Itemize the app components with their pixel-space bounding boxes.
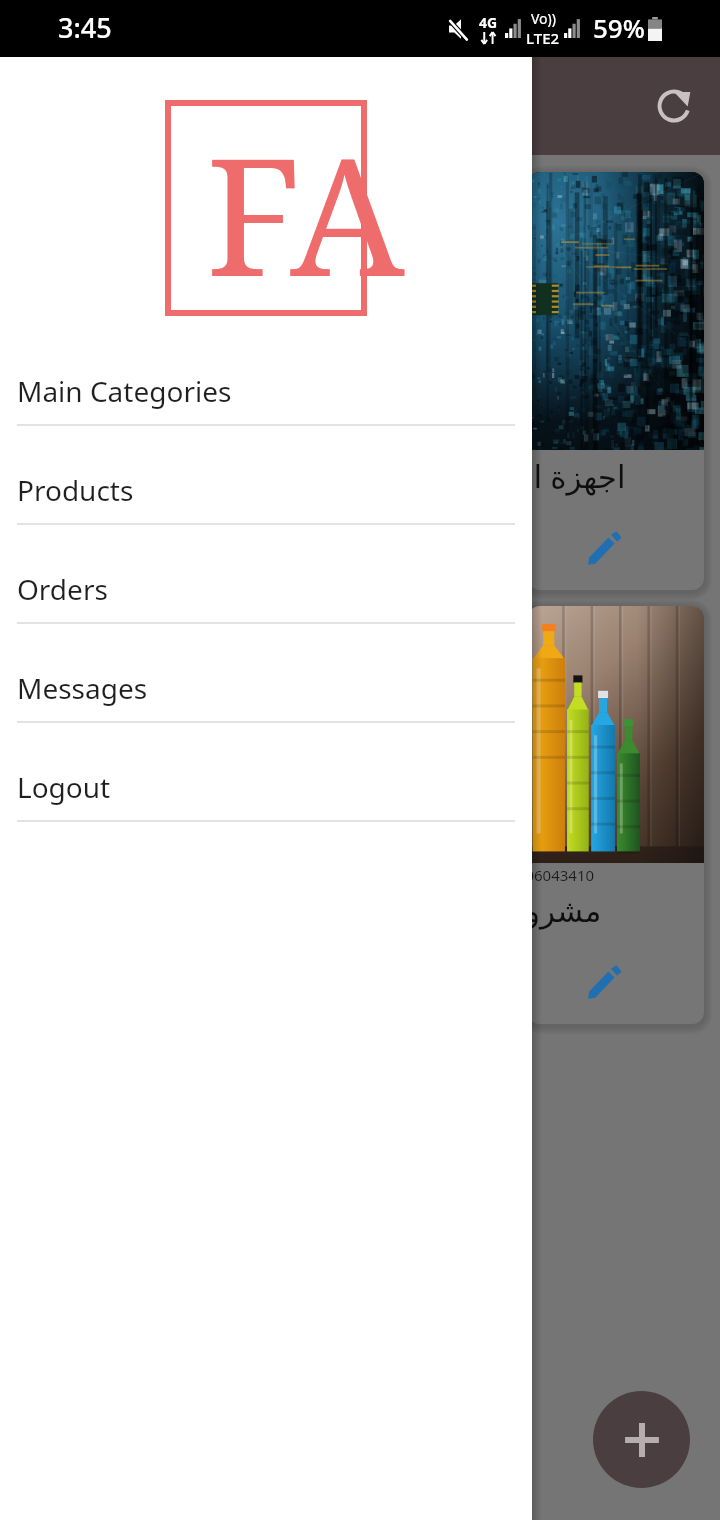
staticText: 3:45 [58,9,112,46]
staticText: LTE2 [526,28,560,48]
staticText: مشرو [528,893,602,929]
staticText: Products [17,471,134,509]
staticText: FA [206,103,405,319]
button[interactable]: اجهزة ال [528,172,704,590]
button[interactable]: Edit [580,524,628,572]
button[interactable]: Add [593,1391,690,1488]
staticText: اجهزة ال [528,455,626,497]
staticText: Messages [17,669,148,707]
staticText: Main Categories [17,372,232,410]
staticText: am · 1006043410 [528,865,595,885]
button[interactable]: Logout [0,723,532,822]
staticText: 4G [479,13,498,32]
staticText: Vo)) [531,9,556,28]
staticText: 59% [593,10,645,45]
button[interactable]: Edit [580,958,628,1006]
button[interactable]: Products [0,426,532,525]
staticText: Logout [17,768,111,806]
staticText: Orders [17,570,108,608]
button[interactable]: Messages [0,624,532,723]
button[interactable]: Refresh [646,78,702,134]
button[interactable]: Main Categories [0,327,532,426]
button[interactable]: am · 1006043410 [528,606,704,1024]
button[interactable]: Orders [0,525,532,624]
